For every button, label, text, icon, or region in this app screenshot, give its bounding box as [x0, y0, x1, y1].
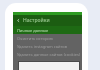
staticText: Удалить данные сайтов (cookies) — [17, 52, 81, 57]
other: Back — [16, 18, 21, 23]
button[interactable]: Очистить историю — [13, 34, 82, 42]
staticText: Очистить историю — [17, 36, 54, 41]
button[interactable]: Back — [13, 15, 82, 26]
staticText: Настройки — [23, 17, 50, 24]
staticText: Удалить instagram сайтов — [17, 44, 67, 49]
staticText: Личные данные — [17, 28, 49, 33]
button[interactable]: Удалить instagram сайтов — [13, 42, 82, 50]
button[interactable]: Личные данные — [13, 26, 82, 34]
button[interactable]: Удалить данные сайтов (cookies) — [13, 50, 82, 58]
